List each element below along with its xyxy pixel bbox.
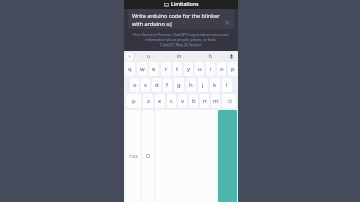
- staticText: j: [202, 81, 204, 89]
- button[interactable]: o: [217, 62, 226, 76]
- staticText: d: [155, 81, 159, 89]
- button[interactable]: x: [155, 94, 165, 108]
- staticText: Free Research Preview. ChatGPT may produ…: [132, 32, 230, 42]
- button[interactable]: n: [200, 94, 209, 108]
- staticText: h: [189, 81, 193, 89]
- staticText: b: [209, 53, 213, 60]
- button[interactable]: Write arduino code for the blinker with …: [128, 9, 234, 29]
- button[interactable]: Expand toolbar: [126, 53, 133, 60]
- staticText: z: [147, 97, 150, 105]
- staticText: w: [140, 65, 145, 73]
- staticText: u: [147, 53, 151, 60]
- staticText: g: [177, 81, 181, 89]
- staticText: v: [181, 97, 185, 105]
- staticText: u: [198, 65, 202, 73]
- button[interactable]: Enter: [218, 110, 237, 202]
- button[interactable]: Voice input: [226, 51, 236, 62]
- staticText: Limitations: [171, 1, 199, 8]
- button[interactable]: c: [167, 94, 176, 108]
- button[interactable]: q: [125, 62, 135, 76]
- staticText: t: [176, 65, 179, 73]
- staticText: c: [170, 97, 173, 105]
- staticText: o: [220, 65, 224, 73]
- button[interactable]: p: [228, 62, 237, 76]
- button[interactable]: y: [184, 62, 193, 76]
- staticText: m: [213, 97, 219, 105]
- button[interactable]: Send: [224, 19, 231, 26]
- staticText: y: [187, 65, 191, 73]
- button[interactable]: b: [189, 94, 198, 108]
- button[interactable]: e: [149, 62, 159, 76]
- staticText: x: [158, 97, 162, 105]
- staticText: f: [166, 81, 169, 89]
- button[interactable]: w: [137, 62, 147, 76]
- button[interactable]: g: [174, 78, 184, 92]
- button[interactable]: t: [173, 62, 182, 76]
- button[interactable]: Backspace: [222, 94, 236, 108]
- button[interactable]: d: [152, 78, 161, 92]
- button[interactable]: r: [161, 62, 171, 76]
- button[interactable]: l: [222, 78, 232, 92]
- staticText: Write arduino code for the blinker with …: [132, 12, 222, 28]
- staticText: b: [192, 97, 196, 105]
- button[interactable]: ?123: [125, 110, 141, 202]
- button[interactable]: i: [206, 62, 215, 76]
- button[interactable]: ChatGPT May 23 Version: [160, 42, 202, 47]
- button[interactable]: h: [186, 78, 196, 92]
- staticText: k: [213, 81, 217, 89]
- staticText: p: [231, 65, 235, 73]
- staticText: q: [128, 65, 132, 73]
- button[interactable]: s: [141, 78, 150, 92]
- button[interactable]: v: [178, 94, 187, 108]
- button[interactable]: u: [195, 62, 204, 76]
- button[interactable]: m: [211, 94, 220, 108]
- button[interactable]: in: [164, 51, 195, 62]
- staticText: i: [210, 65, 212, 73]
- button[interactable]: o: [130, 78, 139, 92]
- staticText: l: [226, 81, 228, 89]
- staticText: e: [152, 65, 156, 73]
- button[interactable]: Emoji: [142, 110, 154, 202]
- staticText: r: [165, 65, 168, 73]
- button[interactable]: k: [210, 78, 220, 92]
- staticText: s: [144, 81, 147, 89]
- staticText: ?123: [129, 154, 138, 159]
- button[interactable]: u: [133, 51, 164, 62]
- button[interactable]: Shift: [126, 94, 141, 108]
- staticText: o: [133, 81, 137, 89]
- staticText: in: [177, 53, 182, 60]
- button[interactable]: b: [195, 51, 226, 62]
- staticText: n: [203, 97, 207, 105]
- button[interactable]: f: [163, 78, 172, 92]
- button[interactable]: z: [143, 94, 153, 108]
- button[interactable]: j: [198, 78, 208, 92]
